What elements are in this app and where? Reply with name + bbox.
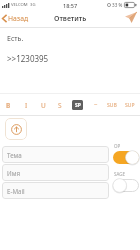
staticText: Тема	[7, 151, 22, 159]
button[interactable]: B	[0, 98, 17, 112]
staticText: SUP	[125, 102, 135, 109]
button[interactable]: E-Mail	[2, 182, 109, 199]
button[interactable]: U	[35, 98, 52, 112]
staticText: VELCOM	[11, 2, 28, 8]
staticText: SP	[75, 102, 81, 109]
button[interactable]: Send	[119, 10, 140, 27]
staticText: I	[25, 101, 28, 110]
staticText: Назад	[8, 14, 29, 23]
staticText: Ответить	[54, 14, 87, 24]
staticText: SAGE	[114, 171, 126, 177]
button[interactable]: Toggle on	[113, 151, 139, 164]
staticText: 33 %	[112, 2, 123, 8]
button[interactable]: Attach file	[5, 118, 27, 140]
button[interactable]: −	[89, 98, 103, 112]
button[interactable]: S	[52, 98, 68, 112]
staticText: S	[58, 101, 62, 110]
staticText: SUB	[107, 102, 117, 109]
button[interactable]: Имя	[2, 164, 109, 181]
staticText: 3G	[30, 2, 36, 8]
button[interactable]: SUP	[121, 98, 139, 112]
staticText: Имя	[7, 169, 20, 177]
staticText: 18:57	[63, 2, 78, 9]
button[interactable]: Тема	[2, 146, 109, 163]
staticText: −	[94, 101, 98, 109]
button[interactable]: SUB	[103, 98, 121, 112]
staticText: U	[41, 101, 46, 110]
button[interactable]: SP	[72, 100, 83, 110]
staticText: B	[6, 101, 11, 110]
staticText: >>1230395	[7, 53, 49, 64]
staticText: OP	[114, 143, 121, 149]
button[interactable]: Назад	[0, 11, 33, 26]
staticText: E-Mail	[7, 187, 25, 195]
button[interactable]: Toggle off	[113, 179, 139, 192]
button[interactable]: I	[17, 98, 35, 112]
staticText: Есть.	[7, 34, 24, 44]
